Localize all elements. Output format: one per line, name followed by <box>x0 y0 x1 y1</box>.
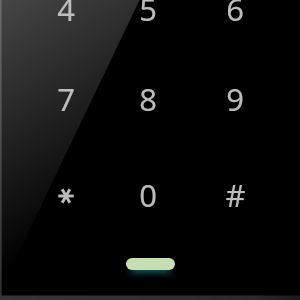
staticText: 8 <box>139 78 157 120</box>
staticText: 0 <box>139 174 157 216</box>
button[interactable]: 7 <box>36 69 96 129</box>
button[interactable]: 0 <box>118 165 178 225</box>
staticText: 5 <box>139 0 157 30</box>
button[interactable]: Call <box>126 258 175 270</box>
button[interactable]: # <box>205 165 265 225</box>
button[interactable]: 9 <box>205 69 265 129</box>
staticText: # <box>225 174 246 216</box>
button[interactable]: star <box>36 165 96 225</box>
button[interactable]: 5 <box>118 0 178 39</box>
button[interactable]: 8 <box>118 69 178 129</box>
button[interactable]: 6 <box>205 0 265 39</box>
staticText: 4 <box>57 0 75 30</box>
staticText: 9 <box>226 78 244 120</box>
staticText: 6 <box>226 0 244 30</box>
staticText: 7 <box>57 78 75 120</box>
button[interactable]: 4 <box>36 0 96 39</box>
